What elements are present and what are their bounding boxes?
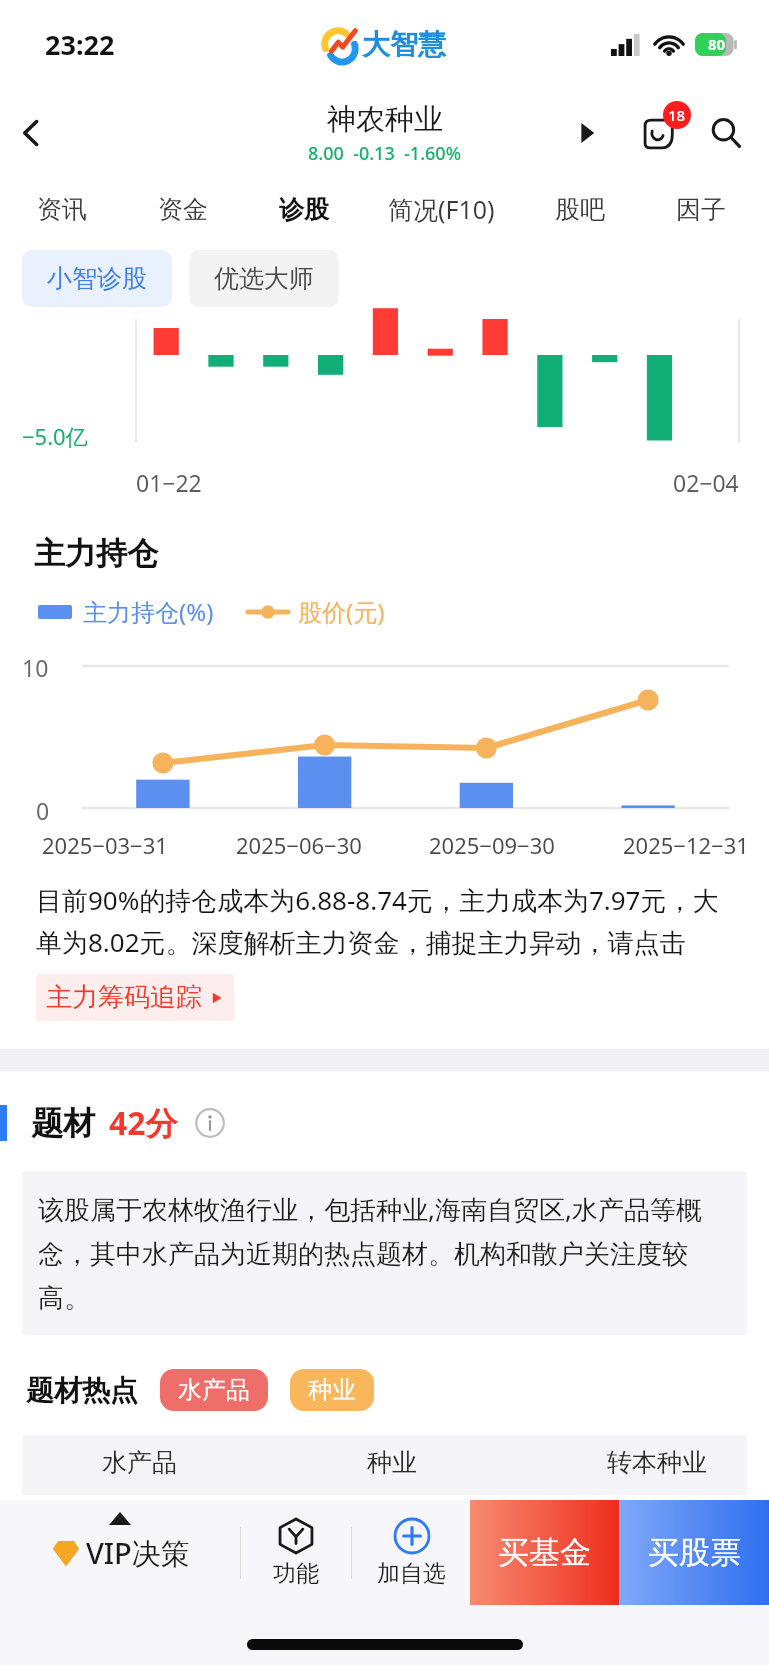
staticText: 2025−12−31	[623, 830, 749, 860]
staticText: 诊股	[279, 194, 329, 225]
staticText: 18	[668, 105, 686, 125]
button[interactable]: 买基金	[470, 1500, 619, 1605]
button[interactable]: 种业	[290, 1369, 374, 1411]
staticText: 股吧	[555, 194, 605, 225]
staticText: 小智诊股	[47, 263, 147, 294]
staticText: 功能	[273, 1559, 319, 1588]
staticText: 神农种业	[327, 101, 443, 138]
staticText: 02−04	[673, 467, 739, 498]
staticText: −5.0亿	[22, 421, 88, 451]
staticText: 买股票	[648, 1533, 741, 1572]
staticText: 2025−06−30	[236, 830, 362, 860]
staticText: 转本种业	[607, 1447, 707, 1478]
staticText: 大智慧	[362, 27, 446, 62]
button[interactable]: 买股票	[619, 1500, 769, 1605]
staticText: 2025−03−31	[42, 830, 168, 860]
button[interactable]: Info	[194, 1107, 226, 1139]
staticText: 目前90%的持仓成本为6.88-8.74元，主力成本为7.97元，大单为8.02…	[36, 882, 739, 960]
staticText: 优选大师	[214, 263, 314, 294]
staticText: 主力持仓(%)	[83, 595, 214, 628]
staticText: 该股属于农林牧渔行业，包括种业,海南自贸区,水产品等概念，其中水产品为近期的热点…	[38, 1191, 731, 1315]
staticText: 主力筹码追踪	[46, 981, 202, 1014]
staticText: 10	[22, 652, 49, 683]
button[interactable]: 因子	[640, 178, 761, 240]
staticText: 买基金	[498, 1533, 591, 1572]
button[interactable]: 加自选	[352, 1500, 470, 1605]
staticText: 题材热点	[26, 1373, 138, 1408]
button[interactable]: 简况(F10)	[364, 178, 519, 240]
staticText: 股价(元)	[298, 595, 385, 628]
staticText: 8.00 -0.13 -1.60%	[308, 141, 461, 166]
staticText: 种业	[308, 1375, 356, 1405]
button[interactable]: 主力筹码追踪	[36, 974, 234, 1021]
button[interactable]: 小智诊股	[22, 250, 172, 307]
staticText: 42分	[109, 1101, 178, 1145]
staticText: 加自选	[377, 1559, 446, 1588]
button[interactable]: 资讯	[2, 178, 122, 240]
button[interactable]: Search	[697, 104, 755, 162]
staticText: 资金	[158, 194, 208, 225]
staticText: 主力持仓	[34, 534, 158, 573]
button[interactable]: 优选大师	[189, 250, 339, 307]
staticText: 题材	[31, 1103, 95, 1143]
button[interactable]: 功能	[241, 1500, 351, 1605]
button[interactable]: 水产品	[160, 1369, 268, 1411]
staticText: 23:22	[45, 26, 115, 63]
staticText: 种业	[367, 1447, 417, 1478]
staticText: 水产品	[102, 1447, 177, 1478]
button[interactable]: 诊股	[243, 178, 364, 240]
staticText: 2025−09−30	[429, 830, 555, 860]
staticText: 资讯	[37, 194, 87, 225]
button[interactable]: VIP决策	[0, 1500, 240, 1605]
button[interactable]: 资金	[122, 178, 243, 240]
button[interactable]: 股吧	[519, 178, 640, 240]
staticText: 0	[36, 795, 50, 826]
staticText: 01−22	[136, 467, 202, 498]
button[interactable]: Play	[561, 107, 613, 159]
staticText: 水产品	[178, 1375, 250, 1405]
staticText: 80	[708, 34, 726, 54]
button[interactable]: Messages	[629, 104, 687, 162]
button[interactable]: Back	[0, 101, 64, 165]
staticText: VIP决策	[86, 1533, 190, 1573]
staticText: 简况(F10)	[388, 192, 495, 226]
staticText: 因子	[676, 194, 726, 225]
